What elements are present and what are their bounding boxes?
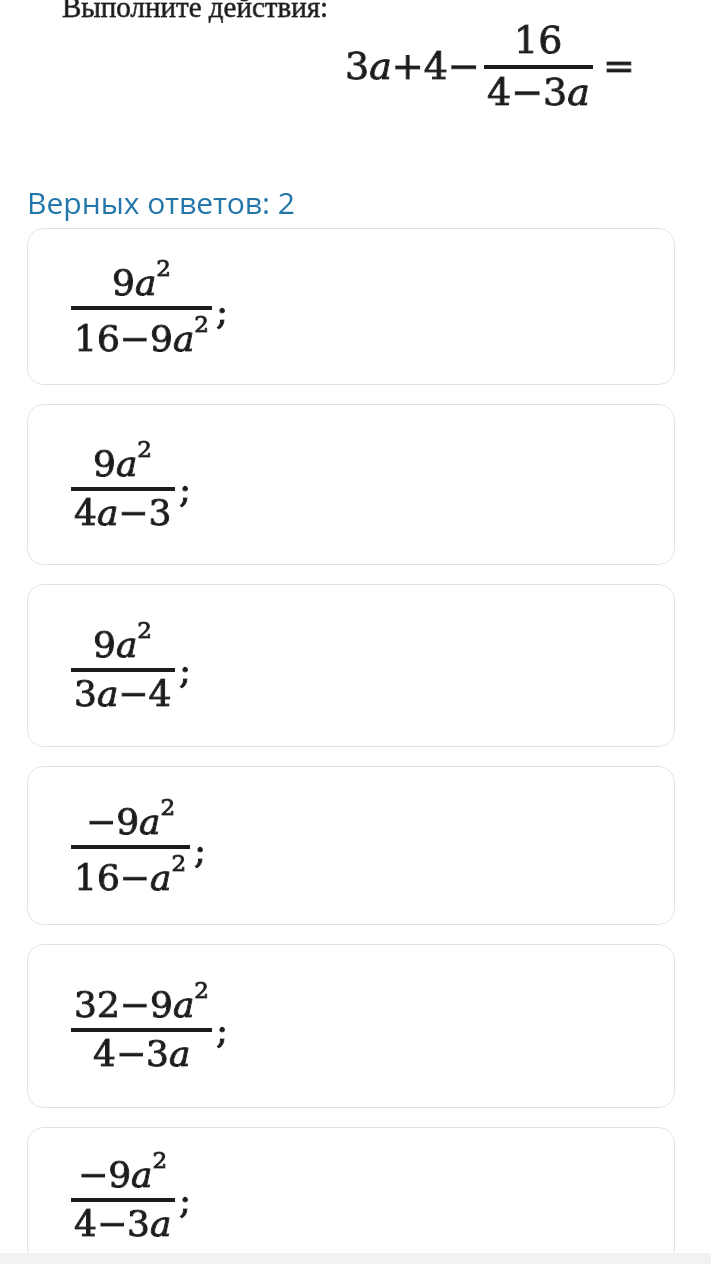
button[interactable]: −9a2 [27, 766, 675, 925]
staticText: ; [216, 291, 229, 333]
staticText: ; [216, 291, 229, 333]
staticText: = [603, 44, 635, 88]
staticText: ; [216, 1010, 229, 1052]
staticText: ; [179, 469, 192, 511]
staticText: Выполните действия: [62, 0, 329, 23]
staticText: 4−3a [93, 1033, 191, 1075]
staticText: 4a−3 [74, 492, 172, 534]
staticText: 32−9a2 [74, 977, 209, 1025]
staticText: 4−3a [487, 70, 590, 114]
button[interactable]: 9a2 [27, 584, 675, 747]
staticText: 9a2 [93, 436, 153, 484]
staticText: 3a+4− [345, 44, 480, 88]
staticText: 16 [514, 18, 563, 62]
staticText: −9a2 [86, 794, 176, 842]
staticText: ; [179, 650, 192, 692]
staticText: 9a2 [93, 617, 153, 665]
staticText: −9a2 [86, 794, 176, 842]
button[interactable]: 32−9a2 [27, 944, 675, 1108]
staticText: 4a−3 [74, 492, 172, 534]
staticText: ; [179, 469, 192, 511]
staticText: ; [194, 830, 207, 872]
staticText: 3a+4− [345, 44, 480, 88]
staticText: 9a2 [112, 255, 172, 303]
staticText: −9a2 [78, 1147, 168, 1195]
staticText: ; [216, 1010, 229, 1052]
staticText: ; [194, 830, 207, 872]
staticText: 4−3a [487, 70, 590, 114]
staticText: 4−3a [74, 1203, 172, 1245]
staticText: 16−a2 [74, 850, 187, 898]
staticText: ; [179, 1180, 192, 1222]
staticText: 16−9a2 [74, 311, 209, 359]
button[interactable]: 9a2 [27, 228, 675, 385]
staticText: 4−3a [93, 1033, 191, 1075]
staticText: −9a2 [78, 1147, 168, 1195]
button[interactable]: −9a2 [27, 1127, 675, 1264]
staticText: 32−9a2 [74, 977, 209, 1025]
staticText: 3a−4 [74, 673, 172, 715]
staticText: 4−3a [74, 1203, 172, 1245]
staticText: = [603, 44, 635, 88]
staticText: Выполните действия: [62, 0, 329, 23]
staticText: 16 [514, 18, 563, 62]
staticText: 16−a2 [74, 850, 187, 898]
staticText: 9a2 [93, 436, 153, 484]
staticText: ; [179, 1180, 192, 1222]
staticText: ; [179, 650, 192, 692]
staticText: 16−9a2 [74, 311, 209, 359]
staticText: Верных ответов: 2 [27, 182, 295, 223]
staticText: 3a−4 [74, 673, 172, 715]
staticText: 9a2 [112, 255, 172, 303]
button[interactable]: 9a2 [27, 404, 675, 565]
staticText: 9a2 [93, 617, 153, 665]
